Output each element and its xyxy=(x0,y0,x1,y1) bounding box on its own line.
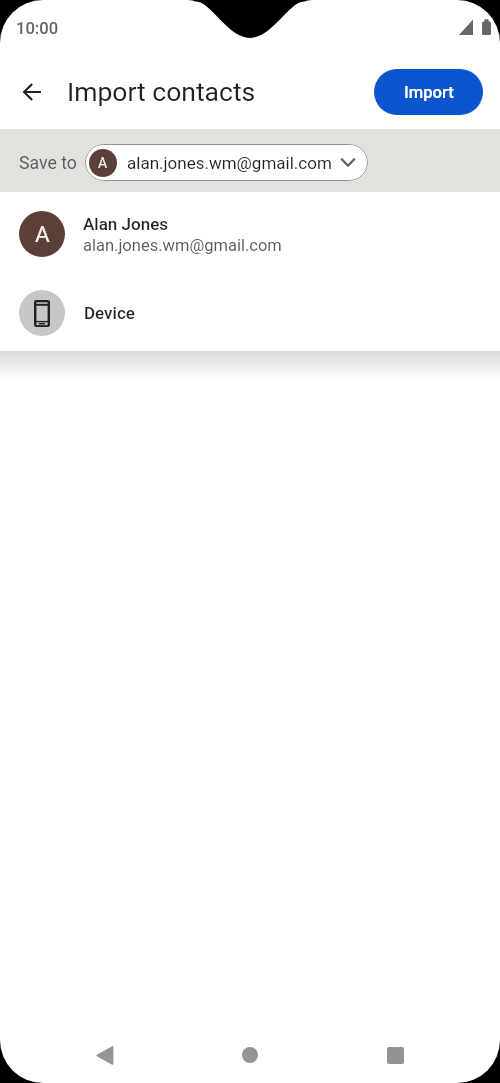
button[interactable]: Import xyxy=(374,69,483,115)
button[interactable]: A xyxy=(0,194,500,274)
staticText: alan.jones.wm@gmail.com xyxy=(83,236,282,255)
staticText: Device xyxy=(84,303,135,323)
button[interactable]: Navigate up xyxy=(8,68,56,116)
staticText: alan.jones.wm@gmail.com xyxy=(127,153,332,173)
button[interactable]: A xyxy=(85,144,368,181)
button[interactable]: Device xyxy=(0,274,500,352)
staticText: Save to xyxy=(19,153,77,174)
button[interactable]: Home xyxy=(228,1033,272,1077)
staticText: Alan Jones xyxy=(83,214,169,234)
staticText: Import contacts xyxy=(67,76,256,107)
button[interactable]: Back xyxy=(82,1033,126,1077)
staticText: A xyxy=(98,155,108,171)
staticText: A xyxy=(35,221,50,247)
staticText: Import xyxy=(404,83,454,102)
staticText: 10:00 xyxy=(16,19,59,38)
button[interactable]: Recent apps xyxy=(373,1033,417,1077)
